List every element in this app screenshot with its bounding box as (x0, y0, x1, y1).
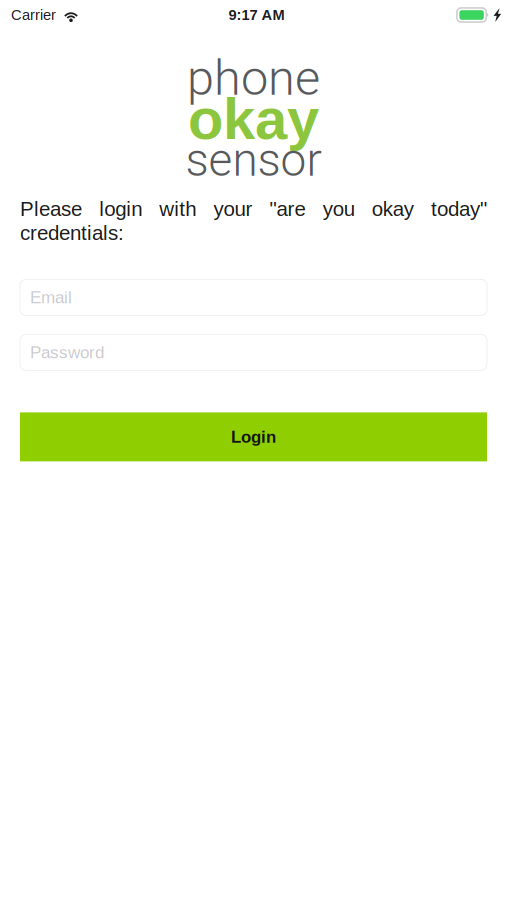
staticText: login (99, 197, 142, 220)
staticText: okay (372, 197, 414, 220)
staticText: Email (30, 288, 72, 307)
staticText: Password (30, 343, 104, 362)
button[interactable]: Email (20, 279, 487, 315)
staticText: okay (188, 87, 319, 151)
button[interactable]: Password (20, 334, 487, 370)
staticText: Please (20, 197, 82, 220)
staticText: today" (431, 197, 487, 220)
staticText: Login (231, 427, 276, 446)
staticText: "are (270, 197, 306, 220)
button[interactable]: Login (20, 412, 487, 461)
staticText: credentials: (20, 221, 124, 244)
staticText: phone (187, 49, 320, 106)
staticText: sensor (185, 133, 321, 187)
staticText: with (159, 197, 196, 220)
staticText: you (323, 197, 355, 220)
staticText: 9:17 AM (228, 7, 284, 23)
staticText: your (213, 197, 252, 220)
staticText: Carrier (11, 7, 56, 23)
